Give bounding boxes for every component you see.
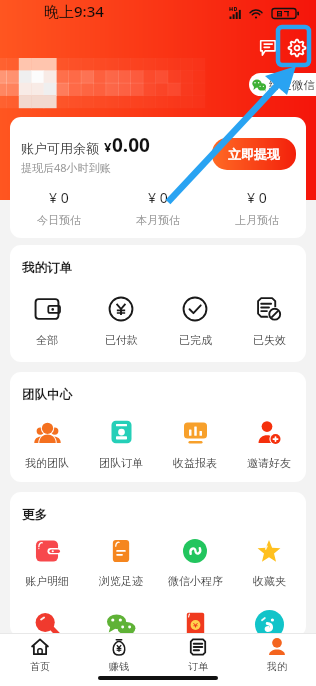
staticText: 我的团队 (25, 456, 69, 470)
button[interactable]: 绑定微信 (249, 73, 316, 96)
staticText: 0.00 (112, 132, 150, 158)
staticText: 上月预估 (235, 213, 279, 227)
button[interactable]: 搜索 (10, 612, 84, 637)
button[interactable]: 已失效 (232, 296, 306, 347)
staticText: 收藏夹 (253, 574, 286, 588)
button[interactable]: ¥ 0 (108, 188, 207, 227)
staticText: 我的 (267, 660, 287, 673)
button[interactable]: 收藏夹 (232, 539, 306, 588)
button[interactable]: 我的团队 (10, 420, 84, 470)
button[interactable]: 我的 (237, 634, 316, 676)
button[interactable]: 订单 (158, 634, 237, 676)
button[interactable]: 已付款 (84, 296, 158, 347)
staticText: 邀请好友 (247, 456, 291, 470)
button[interactable]: 全部 (10, 296, 84, 347)
staticText: 账户可用余额 (21, 140, 99, 156)
staticText: 立即提现 (228, 146, 280, 162)
button[interactable]: ¥ 0 (207, 188, 306, 227)
button[interactable]: 赚钱 (79, 634, 158, 676)
staticText: 更多 (22, 507, 47, 523)
staticText: 首页 (30, 660, 50, 673)
staticText: ¥ 0 (49, 188, 69, 207)
staticText: 团队订单 (99, 456, 143, 470)
button[interactable]: 消息 (253, 33, 282, 62)
staticText: 赚钱 (109, 660, 129, 673)
staticText: 今日预估 (37, 213, 81, 227)
staticText: 团队中心 (22, 387, 72, 403)
staticText: 绑定微信 (269, 78, 315, 92)
staticText: 晚上9:34 (44, 1, 104, 21)
staticText: 收益报表 (173, 456, 217, 470)
staticText: 已失效 (253, 333, 286, 347)
staticText: 浏览足迹 (99, 574, 143, 588)
staticText: 我的订单 (22, 260, 72, 276)
staticText: 订单 (188, 660, 208, 673)
button[interactable]: 已完成 (158, 296, 232, 347)
button[interactable]: 设置 (282, 33, 311, 62)
staticText: 提现后48小时到账 (21, 160, 111, 175)
button[interactable]: ¥ 0 (10, 188, 108, 227)
staticText: ¥ 0 (247, 188, 267, 207)
button[interactable]: 账户明细 (10, 539, 84, 588)
button[interactable]: 收益报表 (158, 420, 232, 470)
button[interactable]: 红包 (158, 612, 232, 637)
staticText: ¥ 0 (148, 188, 168, 207)
staticText: 微信小程序 (168, 574, 223, 588)
staticText: 全部 (36, 333, 58, 347)
button[interactable]: 团队订单 (84, 420, 158, 470)
button[interactable]: 立即提现 (212, 138, 296, 170)
button[interactable]: 邀请好友 (232, 420, 306, 470)
button[interactable]: 微信小程序 (158, 539, 232, 588)
button[interactable]: 更多应用 (232, 612, 306, 637)
staticText: ¥ (104, 138, 112, 156)
button[interactable]: 浏览足迹 (84, 539, 158, 588)
staticText: 已完成 (179, 333, 212, 347)
button[interactable]: 首页 (0, 634, 79, 676)
staticText: 账户明细 (25, 574, 69, 588)
staticText: 本月预估 (136, 213, 180, 227)
button[interactable]: 微信 (84, 612, 158, 637)
staticText: 已付款 (105, 333, 138, 347)
